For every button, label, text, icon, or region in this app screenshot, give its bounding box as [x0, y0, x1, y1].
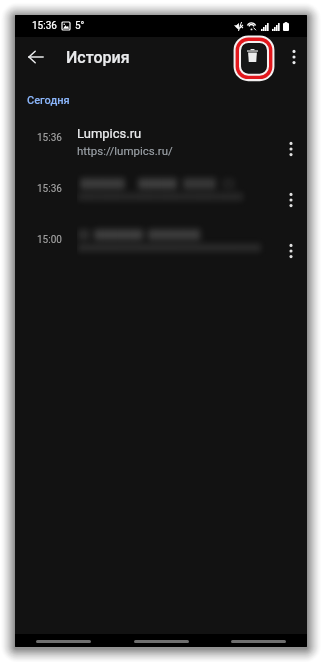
button[interactable]: Home: [121, 634, 202, 647]
button[interactable]: 15:36: [15, 124, 307, 174]
button[interactable]: Clear browsing data: [233, 35, 279, 81]
button[interactable]: History entry options: [274, 124, 307, 174]
staticText: 15:00: [37, 234, 62, 246]
button[interactable]: More options: [281, 42, 307, 72]
button[interactable]: Back: [23, 634, 104, 647]
button[interactable]: Back: [22, 43, 50, 71]
staticText: 15:36: [37, 183, 62, 195]
staticText: https://lumpics.ru/: [77, 144, 173, 157]
button[interactable]: History entry options: [274, 226, 307, 276]
button[interactable]: 15:36: [15, 175, 307, 225]
staticText: 15:36: [37, 132, 62, 144]
staticText: 15:36: [32, 20, 57, 32]
staticText: Сегодня: [27, 94, 70, 107]
staticText: История: [66, 48, 130, 67]
button[interactable]: History entry options: [274, 175, 307, 225]
button[interactable]: 15:00: [15, 226, 307, 276]
staticText: Lumpics.ru: [77, 126, 142, 141]
button[interactable]: Recent apps: [218, 634, 299, 647]
staticText: 5°: [75, 20, 85, 32]
